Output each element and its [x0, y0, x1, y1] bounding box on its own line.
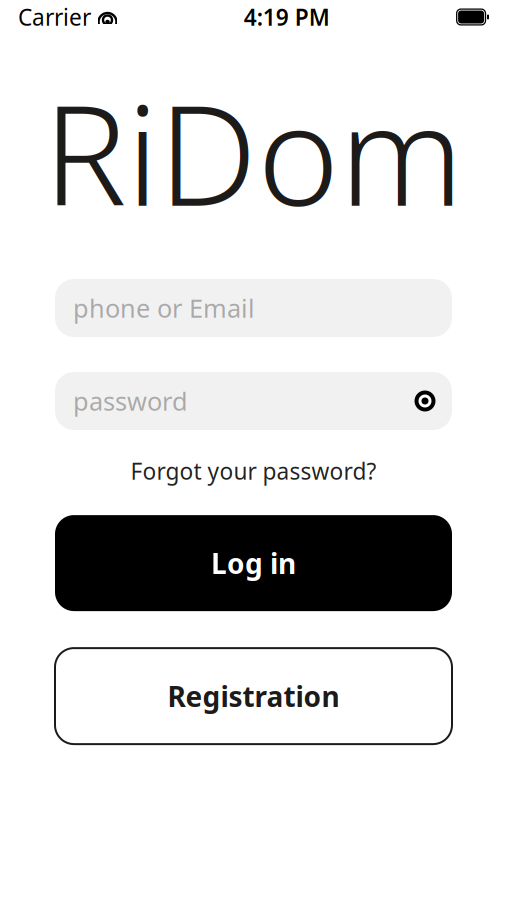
button[interactable]: Show password	[403, 372, 447, 430]
staticText: Forgot your password?	[130, 456, 376, 486]
button[interactable]: Forgot your password?	[120, 451, 386, 491]
staticText: RiDom	[43, 60, 463, 244]
staticText: password	[73, 384, 188, 418]
staticText: Log in	[211, 544, 296, 582]
button[interactable]: Registration	[55, 648, 452, 744]
staticText: 4:19 PM	[244, 2, 330, 32]
button[interactable]: Log in	[55, 515, 452, 611]
staticText: Carrier	[18, 2, 91, 32]
staticText: phone or Email	[73, 291, 255, 325]
staticText: Registration	[167, 677, 339, 715]
